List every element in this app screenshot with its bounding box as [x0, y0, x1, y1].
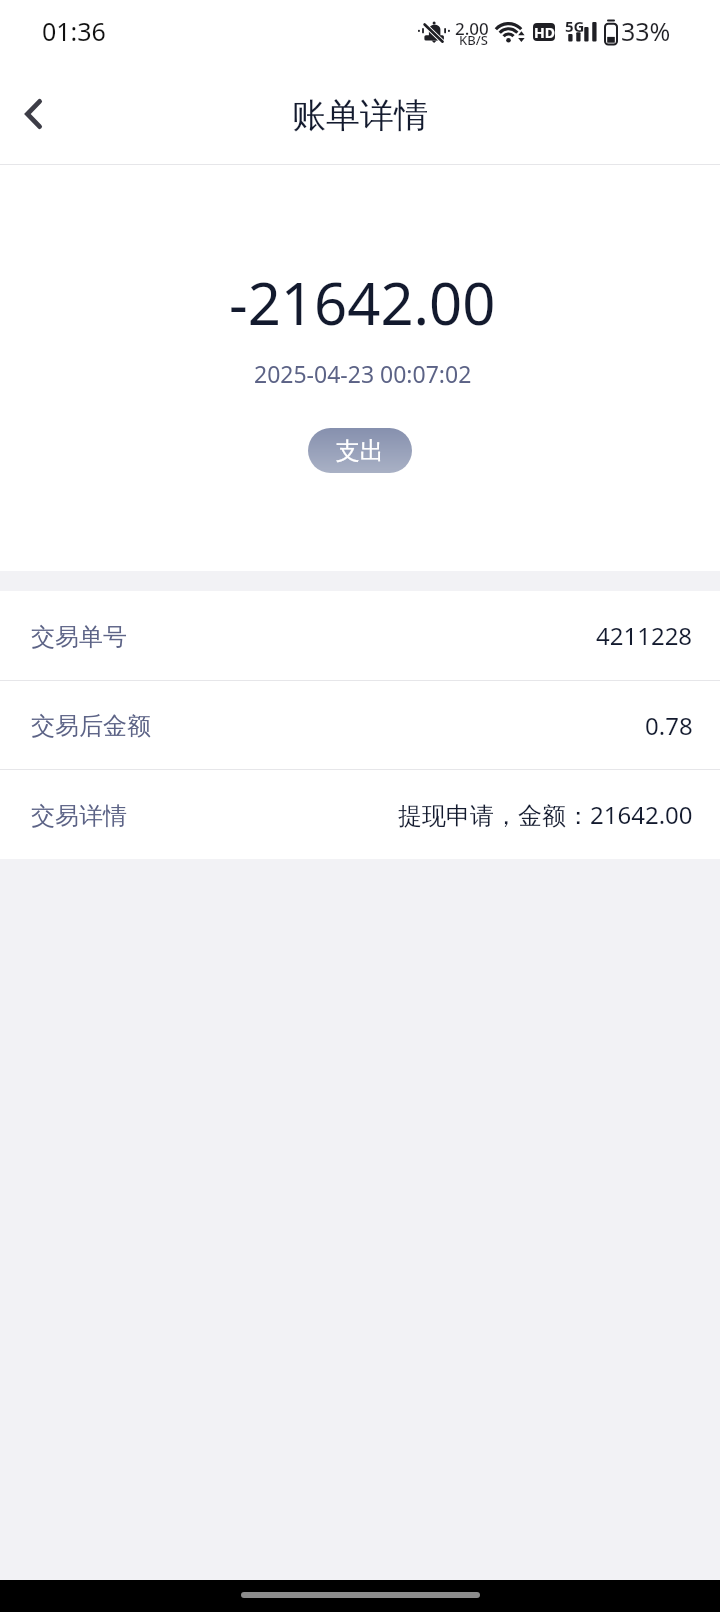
staticText: 33%: [621, 14, 671, 48]
button[interactable]: 支出: [308, 428, 412, 473]
staticText: 4211228: [596, 619, 693, 652]
button[interactable]: 交易详情: [0, 770, 720, 859]
staticText: HD: [534, 23, 555, 41]
staticText: 账单详情: [292, 94, 428, 137]
staticText: 2025-04-23 00:07:02: [254, 358, 472, 389]
staticText: 交易详情: [31, 801, 127, 831]
staticText: -21642.00: [229, 263, 496, 342]
staticText: 0.78: [645, 709, 693, 742]
button[interactable]: 交易后金额: [0, 681, 720, 769]
staticText: 交易后金额: [31, 711, 151, 741]
staticText: 交易单号: [31, 622, 127, 652]
staticText: KB/S: [459, 31, 488, 49]
button[interactable]: 交易单号: [0, 591, 720, 680]
button[interactable]: Back: [1, 72, 65, 156]
staticText: 2.00: [455, 17, 489, 40]
staticText: 01:36: [42, 14, 106, 48]
staticText: 支出: [336, 436, 384, 466]
staticText: 5G: [565, 16, 585, 36]
staticText: 提现申请，金额：21642.00: [398, 798, 693, 831]
